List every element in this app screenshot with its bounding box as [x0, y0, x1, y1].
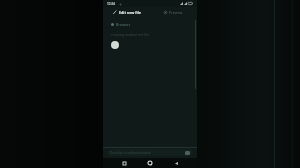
button[interactable]: Edit new file	[103, 7, 150, 17]
button[interactable]: Home	[145, 158, 155, 168]
staticText: Edit new file	[119, 10, 141, 15]
staticText: creating readme.md file	[111, 32, 150, 37]
staticText: Preview	[169, 10, 183, 15]
staticText: Browser	[116, 22, 131, 27]
button[interactable]: Describe a coding assistant	[107, 149, 193, 156]
button[interactable]: Send	[185, 151, 190, 155]
staticText: 12:34	[107, 2, 116, 6]
staticText: Describe a coding assistant	[110, 151, 185, 155]
button[interactable]: Back	[171, 158, 181, 168]
button[interactable]: Recent apps	[119, 158, 129, 168]
button[interactable]: Preview	[150, 7, 197, 17]
